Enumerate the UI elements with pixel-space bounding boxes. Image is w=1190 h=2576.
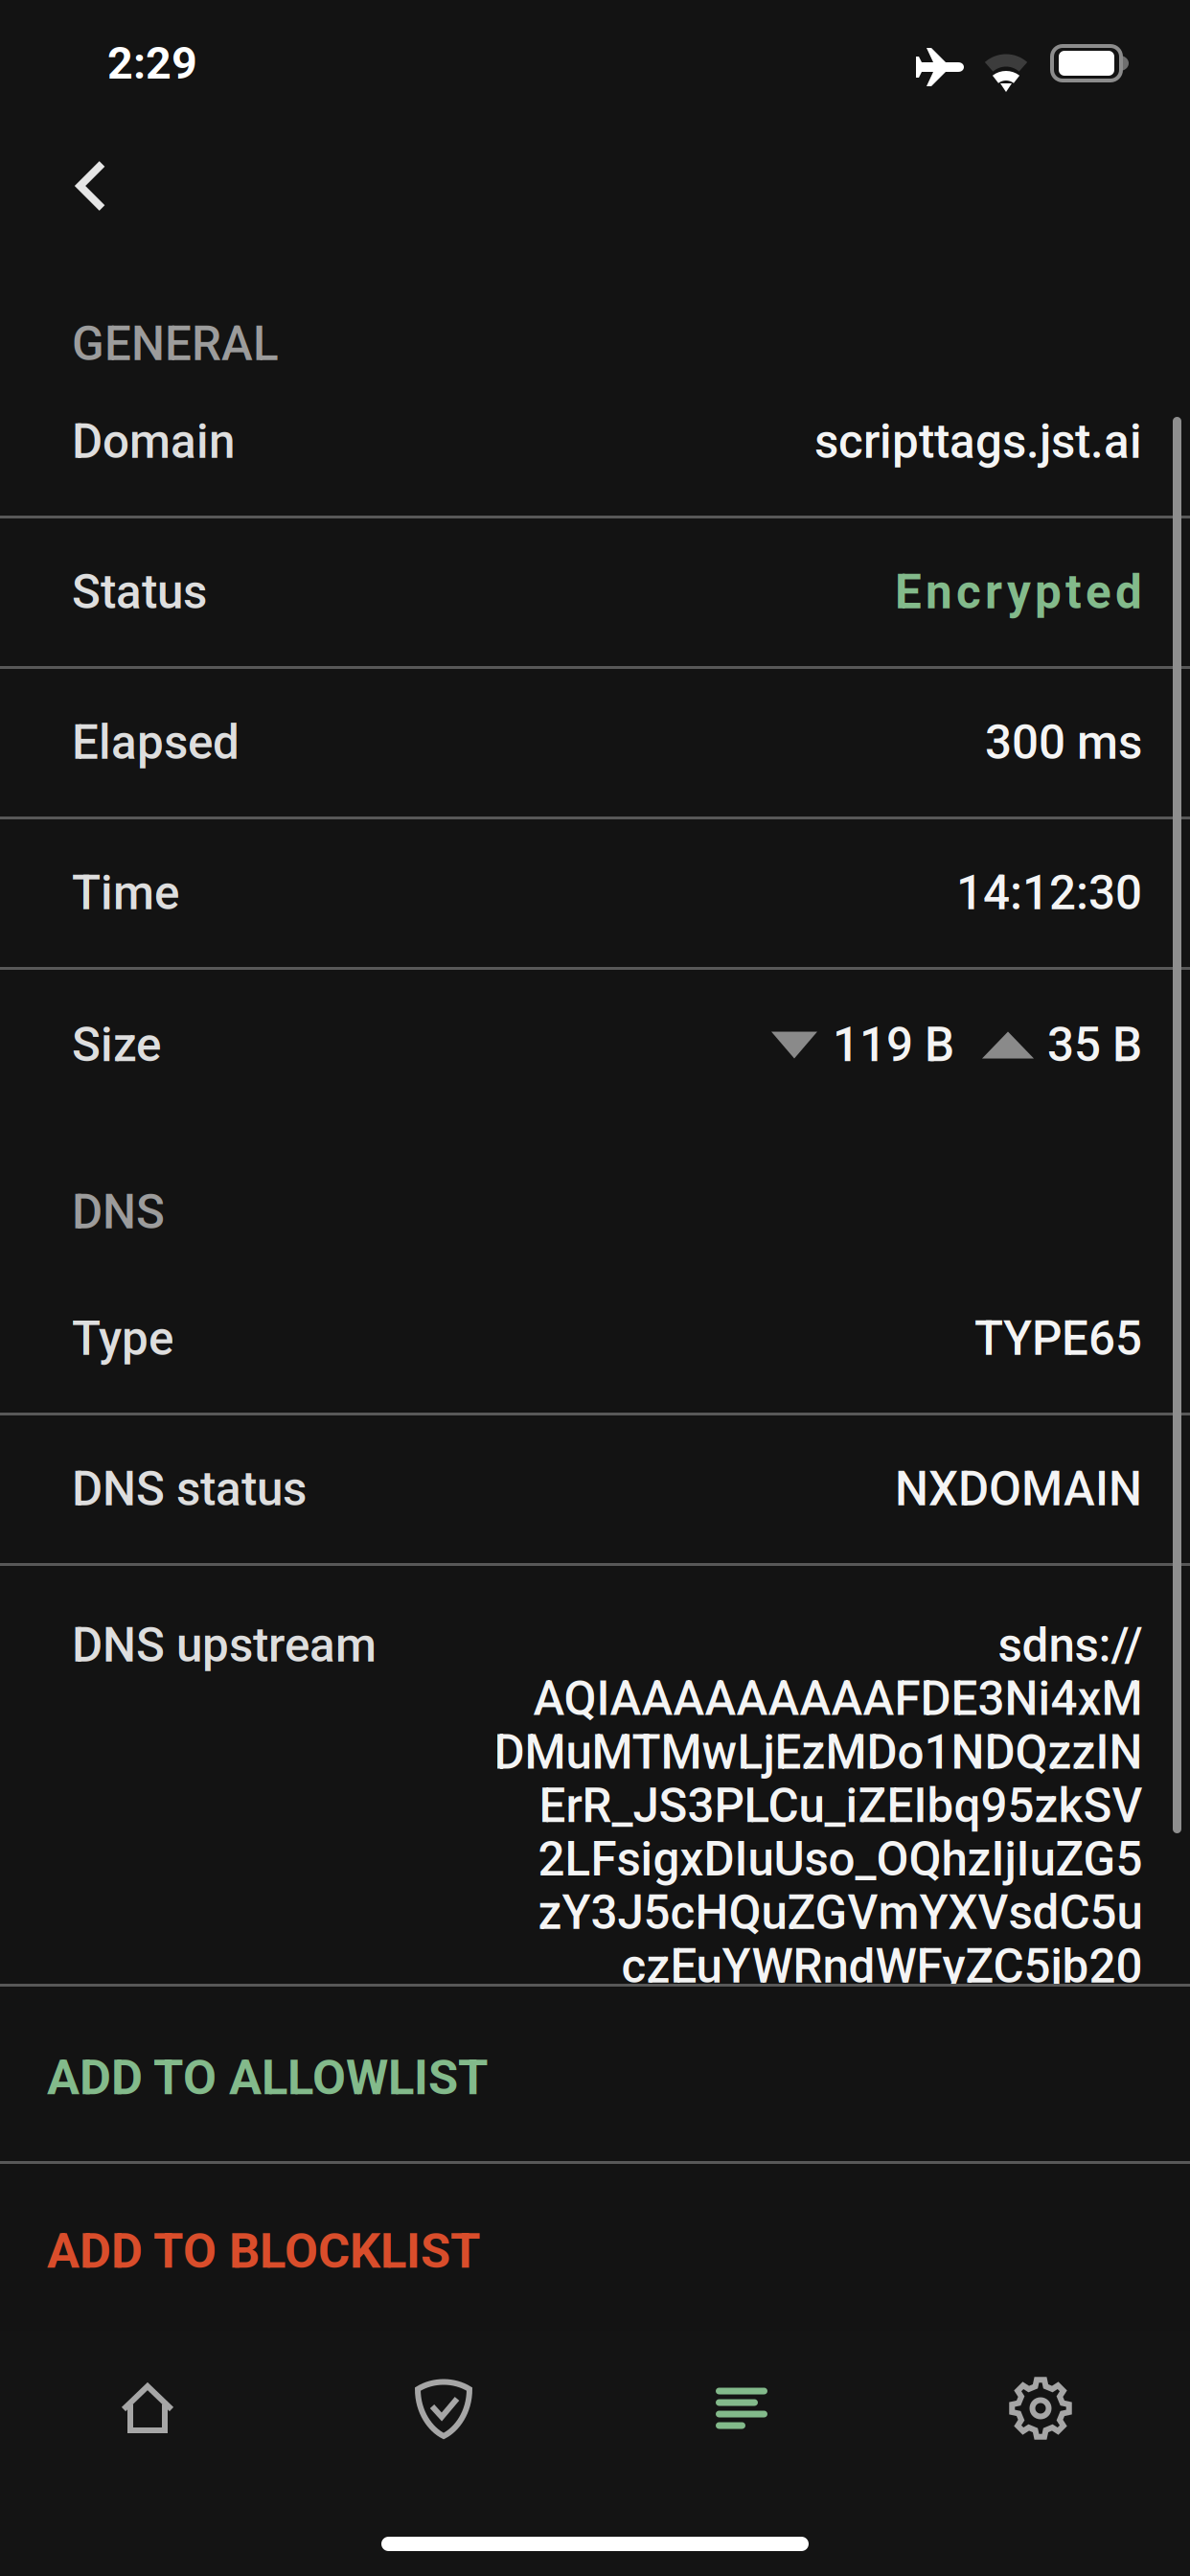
staticText: ADD TO ALLOWLIST [47,2049,488,2106]
staticText: Elapsed [72,715,240,770]
staticText: Encrypted [895,565,1142,620]
button[interactable]: Back [0,126,182,240]
staticText: DNS upstream [72,1618,377,1673]
staticText: 35 B [1047,1017,1142,1073]
staticText: Domain [72,414,235,469]
staticText: TYPE65 [974,1311,1142,1366]
staticText: NXDOMAIN [895,1462,1142,1517]
staticText: ADD TO BLOCKLIST [47,2223,480,2280]
button[interactable]: Home [0,2337,295,2479]
staticText: 14:12:30 [956,865,1142,921]
staticText: Type [72,1311,173,1366]
button[interactable]: Settings [891,2337,1190,2479]
staticText: sdns:// AQIAAAAAAAAAFDE3Ni4xM DMuMTMwLjE… [493,1618,1142,1994]
staticText: DNS status [72,1462,307,1517]
staticText: Time [72,865,179,921]
staticText: Status [72,565,207,620]
button[interactable]: Activity [592,2337,891,2479]
button[interactable]: ADD TO BLOCKLIST [0,2164,1190,2331]
staticText: 2:29 [107,37,197,90]
staticText: GENERAL [72,316,279,372]
staticText: Size [72,1017,161,1073]
button[interactable]: ADD TO ALLOWLIST [0,1987,1190,2161]
staticText: 300 ms [985,715,1142,770]
staticText: DNS [72,1184,165,1240]
staticText: scripttags.jst.ai [814,414,1142,469]
button[interactable]: Protection [295,2337,592,2479]
staticText: 119 B [833,1017,954,1073]
